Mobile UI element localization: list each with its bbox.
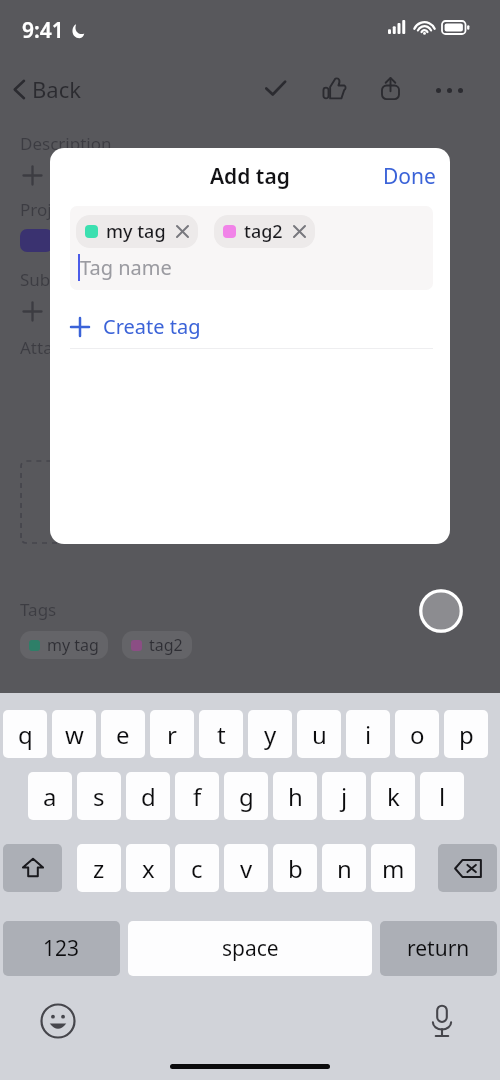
button[interactable]: tag2 xyxy=(122,631,192,659)
button[interactable]: tag2 xyxy=(214,215,315,248)
staticText: w xyxy=(65,718,84,751)
button[interactable]: g xyxy=(224,772,268,820)
staticText: k xyxy=(387,780,400,813)
staticText: space xyxy=(222,934,279,963)
button[interactable]: f xyxy=(175,772,219,820)
staticText: y xyxy=(264,718,277,751)
staticText: t xyxy=(217,718,226,751)
staticText: d xyxy=(141,780,156,813)
button[interactable]: m xyxy=(371,844,415,892)
button[interactable]: h xyxy=(273,772,317,820)
button[interactable]: Done xyxy=(369,156,450,197)
button[interactable]: Emoji xyxy=(30,993,86,1049)
staticText: e xyxy=(116,718,130,751)
staticText: f xyxy=(193,780,202,813)
button[interactable]: space xyxy=(128,921,372,976)
button[interactable]: r xyxy=(150,710,194,758)
staticText: c xyxy=(191,852,203,885)
button[interactable]: p xyxy=(444,710,488,758)
button[interactable]: Like xyxy=(312,66,356,110)
staticText: o xyxy=(410,718,425,751)
staticText: tag2 xyxy=(244,219,283,244)
staticText: my tag xyxy=(47,634,99,656)
staticText: my tag xyxy=(106,219,166,244)
staticText: q xyxy=(18,718,33,751)
button[interactable]: More options xyxy=(425,66,473,114)
button[interactable]: my tag xyxy=(20,631,108,659)
staticText: Back xyxy=(32,74,81,104)
button[interactable]: a xyxy=(28,772,72,820)
staticText: s xyxy=(93,780,105,813)
staticText: Tag name xyxy=(80,254,172,281)
button[interactable]: j xyxy=(322,772,366,820)
staticText: Atta xyxy=(20,336,53,359)
button[interactable]: e xyxy=(101,710,145,758)
button[interactable]: Dictate xyxy=(414,993,470,1049)
button[interactable]: Share xyxy=(368,66,412,110)
staticText: Description xyxy=(20,132,112,155)
staticText: Proj xyxy=(20,198,52,221)
button[interactable]: n xyxy=(322,844,366,892)
button[interactable]: b xyxy=(273,844,317,892)
staticText: 123 xyxy=(43,934,80,963)
button[interactable]: my tag xyxy=(76,215,198,248)
staticText: Sub xyxy=(20,268,51,291)
staticText: i xyxy=(365,718,372,751)
staticText: Create tag xyxy=(103,313,201,340)
button[interactable]: q xyxy=(3,710,47,758)
staticText: v xyxy=(240,852,253,885)
staticText: g xyxy=(239,780,254,813)
button[interactable]: u xyxy=(297,710,341,758)
staticText: m xyxy=(382,852,405,885)
button[interactable]: x xyxy=(126,844,170,892)
button[interactable]: Backspace xyxy=(438,844,497,892)
button[interactable]: z xyxy=(77,844,121,892)
button[interactable]: Shift xyxy=(3,844,62,892)
button[interactable]: Back xyxy=(6,70,87,108)
button[interactable]: o xyxy=(395,710,439,758)
staticText: Done xyxy=(383,162,436,191)
staticText: Add tag xyxy=(210,162,290,191)
staticText: z xyxy=(93,852,105,885)
button[interactable]: l xyxy=(420,772,464,820)
staticText: r xyxy=(167,718,177,751)
button[interactable]: k xyxy=(371,772,415,820)
staticText: u xyxy=(312,718,327,751)
button[interactable]: d xyxy=(126,772,170,820)
button[interactable]: w xyxy=(52,710,96,758)
staticText: l xyxy=(439,780,446,813)
button[interactable]: y xyxy=(248,710,292,758)
staticText: tag2 xyxy=(149,634,183,656)
button[interactable]: 123 xyxy=(3,921,120,976)
staticText: a xyxy=(43,780,57,813)
staticText: j xyxy=(341,780,348,813)
staticText: 9:41 xyxy=(22,16,64,45)
button[interactable]: t xyxy=(199,710,243,758)
button[interactable]: Complete xyxy=(253,66,297,110)
staticText: n xyxy=(337,852,352,885)
staticText: return xyxy=(407,934,470,963)
button[interactable]: return xyxy=(380,921,497,976)
staticText: Tags xyxy=(20,598,57,621)
button[interactable]: v xyxy=(224,844,268,892)
button[interactable]: Create tag xyxy=(62,305,209,348)
button[interactable]: c xyxy=(175,844,219,892)
staticText: p xyxy=(459,718,474,751)
button[interactable]: s xyxy=(77,772,121,820)
staticText: b xyxy=(288,852,303,885)
button[interactable]: i xyxy=(346,710,390,758)
staticText: h xyxy=(288,780,303,813)
staticText: x xyxy=(142,852,155,885)
